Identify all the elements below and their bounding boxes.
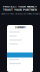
staticText: Identity theft protection made simple: [0, 12, 39, 15]
staticText: Dashboard: [15, 26, 25, 29]
staticText: TRUST YOUR PARTNER: [3, 8, 37, 11]
staticText: PROTECT YOUR MONEY: [3, 5, 37, 8]
